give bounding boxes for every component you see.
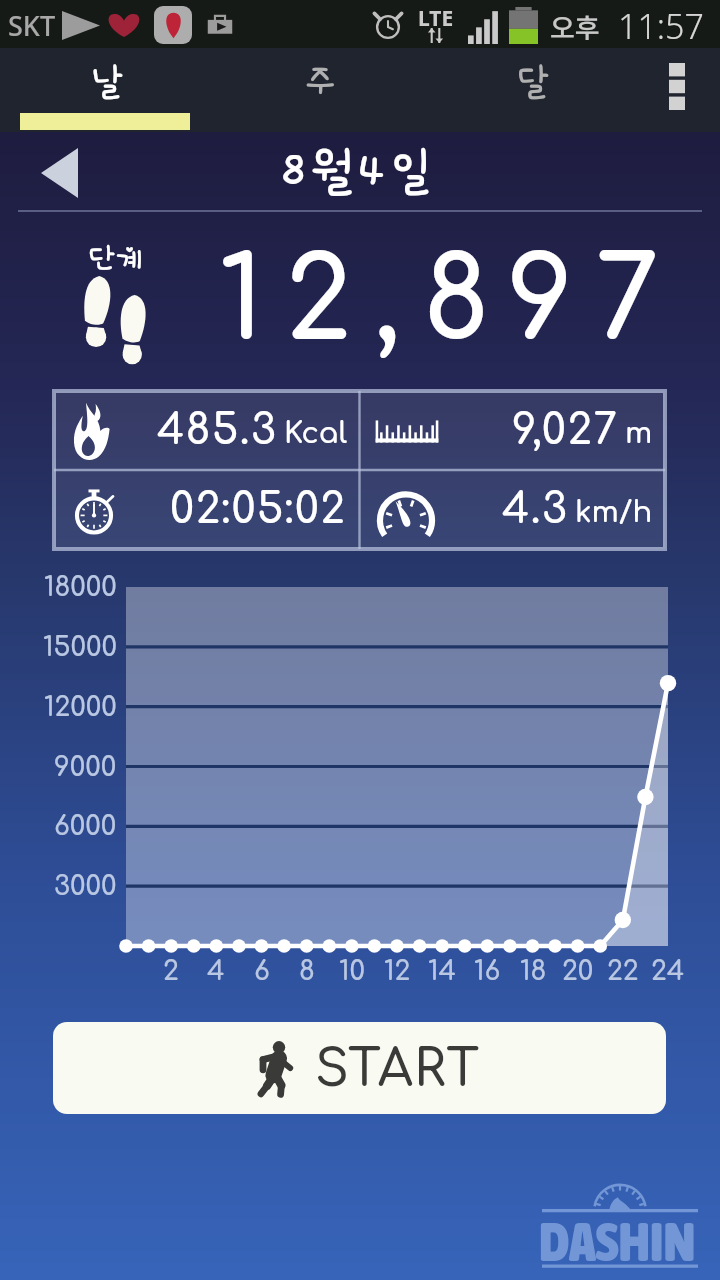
staticText: 오후 <box>550 7 600 46</box>
staticText: 2 <box>163 956 179 986</box>
staticText: 02:05:02 <box>170 486 347 533</box>
staticText: 15000 <box>43 632 117 662</box>
staticText: SKT <box>8 7 56 44</box>
button[interactable]: Previous day <box>26 140 92 206</box>
staticText: 8 <box>299 956 315 986</box>
staticText: 단계 <box>89 243 143 275</box>
staticText: 16 <box>474 956 501 986</box>
staticText: 3000 <box>54 871 117 901</box>
button[interactable]: 날 <box>0 48 214 112</box>
staticText: Kcal <box>284 417 347 449</box>
staticText: 6000 <box>54 811 117 841</box>
staticText: 12 <box>384 956 411 986</box>
staticText: 날 <box>92 62 123 100</box>
button[interactable]: START <box>53 1022 666 1114</box>
staticText: 8월4일 <box>282 144 438 196</box>
staticText: DASHIN <box>539 1211 695 1273</box>
staticText: LTE <box>418 4 454 33</box>
staticText: START <box>315 1042 481 1098</box>
staticText: 20 <box>562 956 594 986</box>
staticText: 22 <box>607 956 639 986</box>
button[interactable]: 달 <box>427 48 640 112</box>
staticText: 12,897 <box>219 239 681 366</box>
staticText: 9,027 <box>512 407 619 454</box>
staticText: 12000 <box>44 692 117 722</box>
staticText: 485.3 <box>157 407 278 454</box>
staticText: 달 <box>518 62 549 100</box>
staticText: 6 <box>254 956 270 986</box>
staticText: 주 <box>305 62 336 100</box>
staticText: 4.3 <box>502 486 569 533</box>
staticText: 11:57 <box>618 3 704 49</box>
staticText: km/h <box>575 496 653 528</box>
button[interactable]: 주 <box>214 48 427 112</box>
staticText: 9000 <box>54 752 117 782</box>
staticText: 18000 <box>44 572 117 602</box>
staticText: 14 <box>428 956 457 986</box>
staticText: 4 <box>207 956 225 986</box>
staticText: 24 <box>651 956 685 986</box>
staticText: 10 <box>339 956 365 986</box>
button[interactable]: More options <box>640 48 720 112</box>
staticText: m <box>625 417 653 449</box>
staticText: 18 <box>520 956 547 986</box>
